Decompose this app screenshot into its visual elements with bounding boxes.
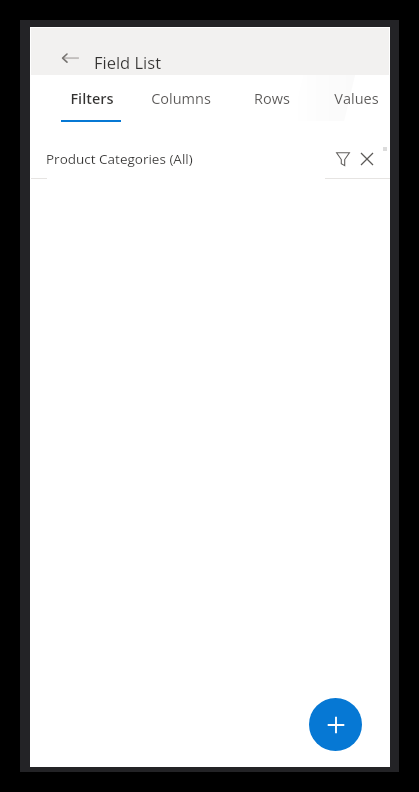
button[interactable]: Add [309, 698, 362, 751]
button[interactable]: Close [349, 141, 385, 177]
staticText: Columns [151, 89, 211, 109]
staticText: Field List [94, 51, 162, 73]
button[interactable]: Filters [50, 75, 133, 123]
button[interactable]: Filter [325, 141, 361, 177]
button[interactable]: Values [314, 75, 398, 123]
staticText: Values [334, 89, 379, 109]
staticText: Filters [70, 89, 114, 109]
button[interactable]: Rows [234, 75, 310, 123]
staticText: Product Categories (All) [46, 150, 193, 168]
button[interactable]: Back [51, 38, 91, 78]
staticText: Rows [254, 89, 290, 109]
button[interactable]: Columns [130, 75, 231, 123]
